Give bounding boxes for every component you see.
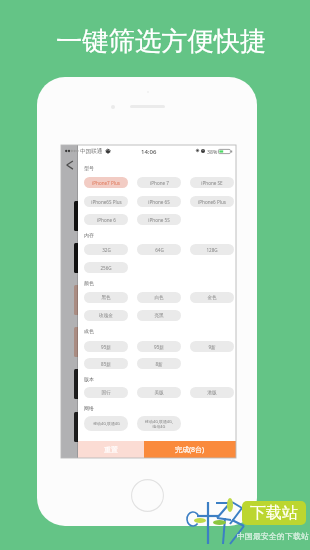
button[interactable]: 256G <box>84 262 128 273</box>
button[interactable]: 美版 <box>137 387 181 398</box>
button[interactable]: iPhone 6 <box>84 214 128 225</box>
staticText: 移动4G,联通4G, 电信4G <box>145 419 173 429</box>
staticText: 128G <box>206 247 218 253</box>
button[interactable]: 白色 <box>137 292 181 303</box>
button[interactable]: iPhone 7 <box>137 177 181 188</box>
button[interactable]: 移动4G,联通4G, 电信4G <box>137 416 181 431</box>
button[interactable]: 128G <box>190 244 234 255</box>
staticText: 中国最安全的下载站 <box>237 531 309 541</box>
button[interactable]: iPhone SE <box>190 177 234 188</box>
staticText: 一键筛选方便快捷 <box>56 25 267 58</box>
staticText: 14:06 <box>141 148 157 156</box>
staticText: iPhone6S Plus <box>91 199 122 205</box>
button[interactable]: 港版 <box>190 387 234 398</box>
staticText: 型号 <box>84 165 94 171</box>
staticText: iPhone 6 <box>97 217 116 223</box>
button[interactable]: 金色 <box>190 292 234 303</box>
staticText: 玫瑰金 <box>99 313 113 319</box>
staticText: 白色 <box>154 295 164 301</box>
button[interactable]: iPhone 5S <box>137 214 181 225</box>
button[interactable]: 95新 <box>84 341 128 352</box>
button[interactable]: 64G <box>137 244 181 255</box>
button[interactable]: iPhone7 Plus <box>84 177 128 188</box>
button[interactable]: Back <box>61 155 78 175</box>
staticText: iPhone 6S <box>148 199 170 205</box>
staticText: iPhone SE <box>201 180 223 186</box>
button[interactable]: 亮黑 <box>137 310 181 321</box>
staticText: iPhone 5S <box>148 217 170 223</box>
staticText: 版本 <box>84 376 94 382</box>
button[interactable]: iPhone6S Plus <box>84 196 128 207</box>
staticText: iPhone7 Plus <box>92 180 120 186</box>
button[interactable]: iPhone6 Plus <box>190 196 234 207</box>
staticText: 256G <box>100 265 112 271</box>
staticText: 网络 <box>84 405 94 411</box>
staticText: 中国联通 <box>80 148 103 155</box>
button[interactable]: 玫瑰金 <box>84 310 128 321</box>
staticText: 颜色 <box>84 280 94 286</box>
staticText: 亮黑 <box>154 313 164 319</box>
staticText: 38% <box>207 148 218 155</box>
staticText: 重置 <box>104 445 118 454</box>
staticText: 国行 <box>101 390 111 396</box>
button[interactable]: 85新 <box>84 358 128 369</box>
staticText: 成色 <box>84 328 94 334</box>
button[interactable]: 32G <box>84 244 128 255</box>
staticText: 金色 <box>207 295 217 301</box>
staticText: 95新 <box>154 344 164 350</box>
staticText: 85新 <box>101 361 111 367</box>
button[interactable]: 移动4G,联通4G <box>84 416 128 431</box>
button[interactable]: 8新 <box>137 358 181 369</box>
staticText: 移动4G,联通4G <box>93 421 120 426</box>
staticText: 完成(8台) <box>175 445 205 455</box>
staticText: iPhone 7 <box>150 180 169 186</box>
staticText: 内存 <box>84 232 94 238</box>
button[interactable]: 黑色 <box>84 292 128 303</box>
button[interactable]: 完成(8台) <box>144 441 236 458</box>
button[interactable]: 重置 <box>78 441 144 458</box>
staticText: iPhone6 Plus <box>198 199 226 205</box>
button[interactable]: 国行 <box>84 387 128 398</box>
staticText: 64G <box>155 247 164 253</box>
button[interactable]: iPhone 6S <box>137 196 181 207</box>
staticText: 9新 <box>208 344 216 350</box>
staticText: 美版 <box>154 390 164 396</box>
staticText: 8新 <box>155 361 163 367</box>
staticText: 下载站 <box>250 503 298 523</box>
staticText: 95新 <box>101 344 111 350</box>
staticText: 港版 <box>207 390 217 396</box>
staticText: 黑色 <box>101 295 111 301</box>
staticText: 32G <box>102 247 111 253</box>
button[interactable]: 95新 <box>137 341 181 352</box>
button[interactable]: 9新 <box>190 341 234 352</box>
